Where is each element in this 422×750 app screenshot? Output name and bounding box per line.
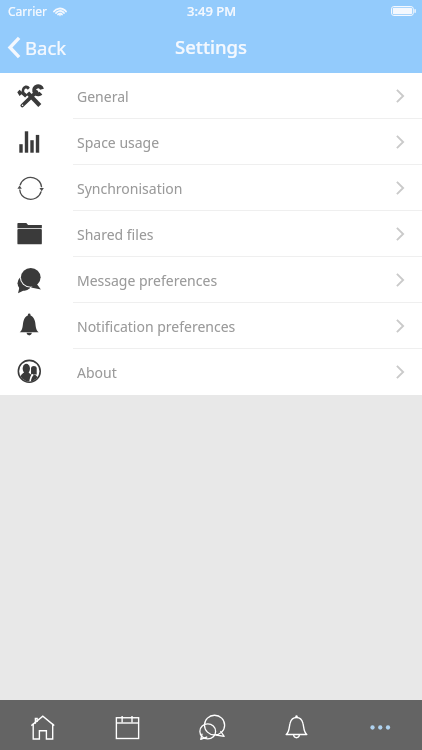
button[interactable]: General [0, 73, 422, 119]
button[interactable]: Notifications [254, 700, 338, 750]
staticText: General [77, 87, 129, 106]
staticText: Settings [175, 34, 248, 59]
button[interactable]: Space usage [0, 119, 422, 165]
button[interactable]: About [0, 349, 422, 395]
staticText: 3:49 PM [187, 2, 237, 20]
button[interactable]: More [338, 700, 422, 750]
staticText: Message preferences [77, 271, 218, 290]
button[interactable]: Home [0, 700, 85, 750]
staticText: Synchronisation [77, 179, 183, 198]
staticText: Back [25, 35, 67, 60]
button[interactable]: Notification preferences [0, 303, 422, 349]
button[interactable]: Calendar [85, 700, 170, 750]
button[interactable]: Shared files [0, 211, 422, 257]
button[interactable]: Back [7, 35, 67, 60]
staticText: About [77, 363, 117, 382]
button[interactable]: Synchronisation [0, 165, 422, 211]
button[interactable]: Messages [170, 700, 254, 750]
staticText: Shared files [77, 225, 154, 244]
staticText: Space usage [77, 133, 160, 152]
button[interactable]: Message preferences [0, 257, 422, 303]
staticText: Carrier [8, 3, 48, 19]
staticText: Notification preferences [77, 317, 236, 336]
